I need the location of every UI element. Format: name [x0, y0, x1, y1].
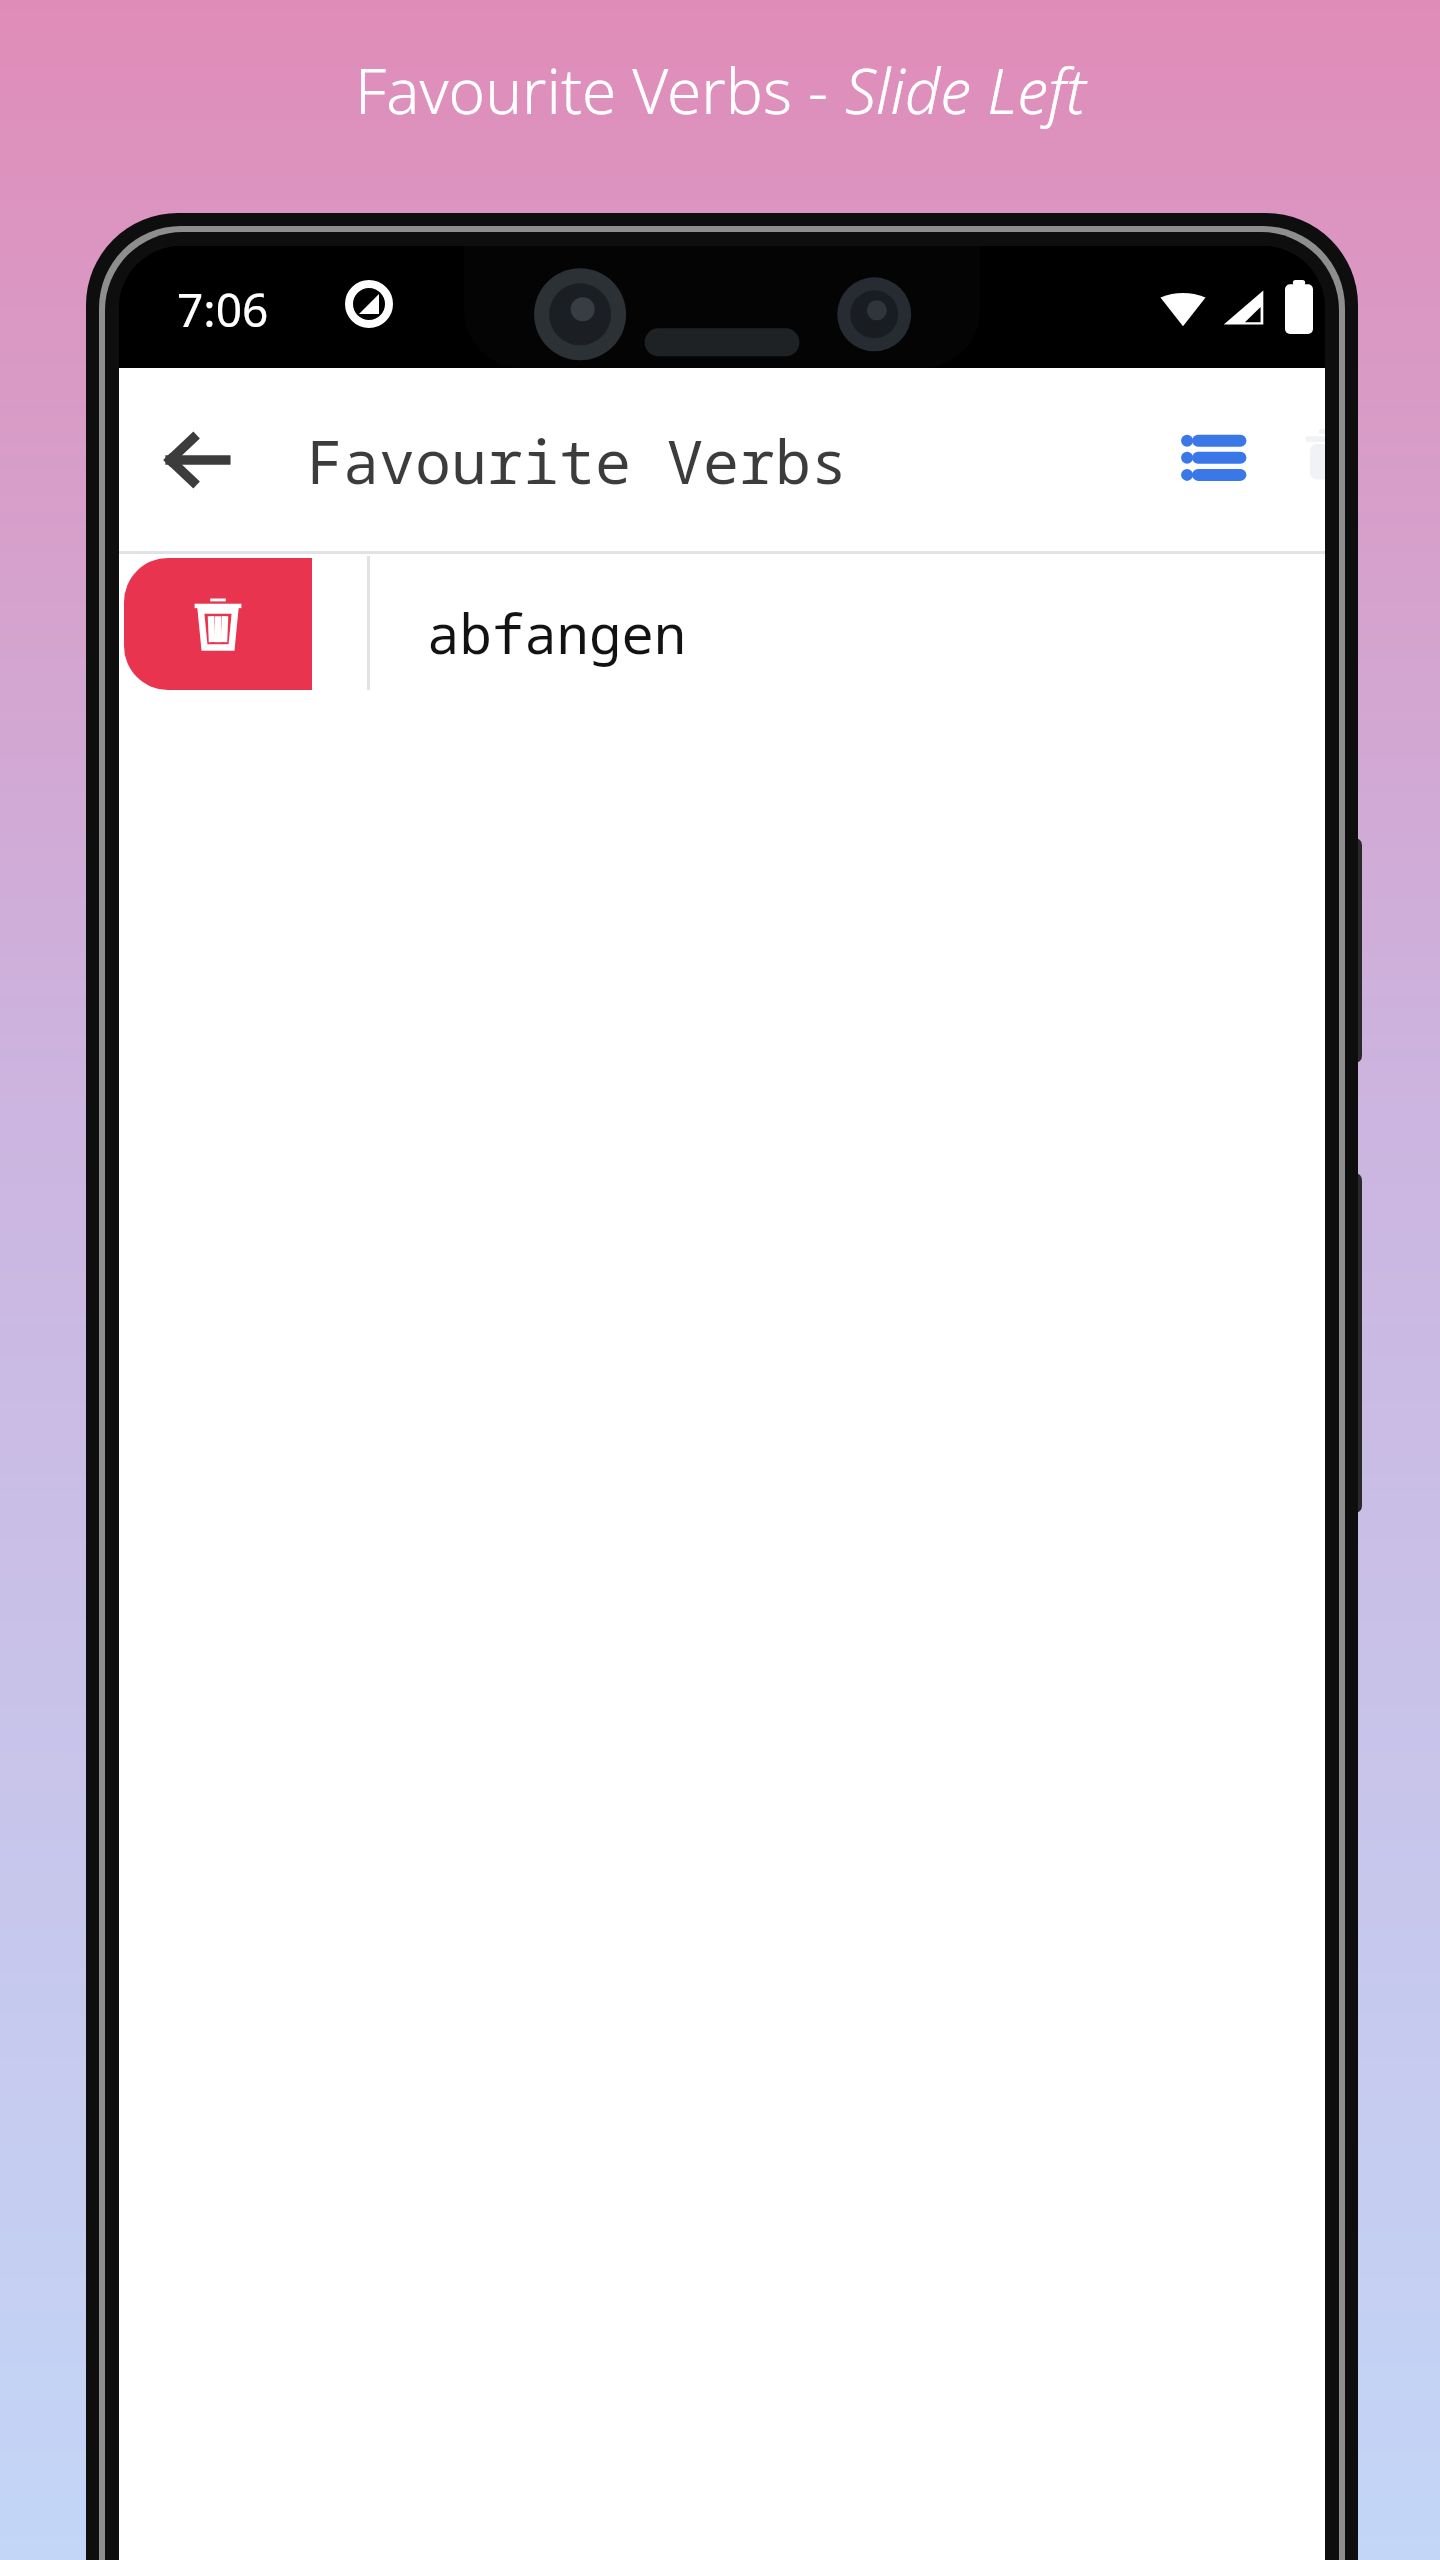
- button[interactable]: Back: [141, 404, 253, 516]
- staticText: 7:06: [177, 278, 269, 341]
- button[interactable]: Delete all: [1277, 404, 1325, 510]
- button[interactable]: Delete: [124, 558, 312, 690]
- button[interactable]: abfangen: [321, 554, 1325, 694]
- staticText: Slide Left: [845, 48, 1086, 132]
- staticText: abfangen: [427, 596, 687, 670]
- staticText: Favourite Verbs: [307, 420, 847, 502]
- button[interactable]: List view: [1159, 404, 1265, 510]
- staticText: Favourite Verbs -: [355, 48, 845, 132]
